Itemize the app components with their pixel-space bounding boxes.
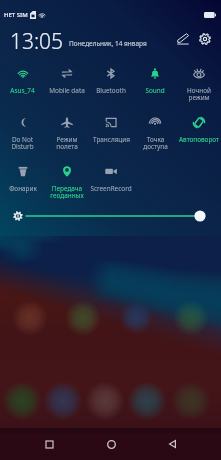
button[interactable]: Передача геоданных [45,161,89,209]
button[interactable]: Do Not Disturb [0,112,45,161]
button[interactable]: Режим полета [45,112,89,161]
staticText: Asus_74 [10,86,35,95]
button[interactable]: Фонарик [0,161,45,209]
staticText: 13:05 [10,27,64,51]
staticText: Понедельник, 14 января [69,39,147,48]
button[interactable]: Автоповорот [177,112,221,161]
staticText: Ночной режим [187,86,211,102]
staticText: Автоповорот [179,135,219,144]
button[interactable]: Back [160,432,184,456]
button[interactable]: Asus_74 [0,63,45,112]
button[interactable]: Settings [195,29,215,49]
button[interactable]: Mobile data [45,63,89,112]
staticText: Фонарик [9,184,37,193]
staticText: Передача геоданных [50,184,84,200]
staticText: Режим полета [56,135,78,151]
button[interactable]: Edit [173,29,193,49]
staticText: Mobile data [49,86,85,95]
button[interactable]: Ночной режим [177,63,221,112]
staticText: Sound [145,86,165,95]
button[interactable]: ScreenRecord [89,161,133,209]
button[interactable]: Точка доступа [133,112,177,161]
button[interactable]: Bluetooth [89,63,133,112]
button[interactable]: Recents [37,432,61,456]
staticText: НЕТ SIM [4,11,28,19]
button[interactable]: Sound [133,63,177,112]
button[interactable]: Home [99,432,123,456]
staticText: Do Not Disturb [11,135,34,151]
staticText: Bluetooth [96,86,126,95]
staticText: ScreenRecord [90,184,132,193]
button[interactable]: Трансляция [89,112,133,161]
staticText: Точка доступа [143,135,168,151]
staticText: Трансляция [93,135,130,144]
